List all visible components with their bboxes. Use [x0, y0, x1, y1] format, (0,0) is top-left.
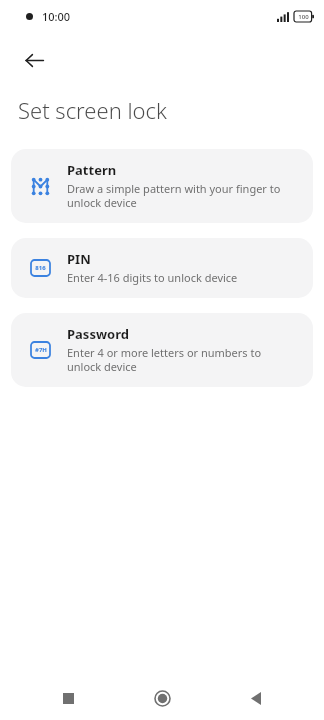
button[interactable]: #7H: [11, 313, 313, 387]
staticText: Pattern: [67, 161, 117, 179]
staticText: Set screen lock: [18, 95, 167, 125]
staticText: #7H: [35, 346, 47, 354]
button[interactable]: Pattern: [11, 149, 313, 223]
staticText: PIN: [67, 250, 91, 268]
staticText: Enter 4 or more letters or numbers to un…: [67, 345, 297, 374]
button[interactable]: Back: [234, 676, 278, 720]
staticText: 10:00: [42, 9, 71, 24]
staticText: Enter 4-16 digits to unlock device: [67, 270, 238, 285]
button[interactable]: 816: [11, 238, 313, 298]
button[interactable]: Recent apps: [46, 676, 90, 720]
staticText: Password: [67, 325, 129, 343]
staticText: 100: [298, 13, 309, 21]
button[interactable]: Home: [140, 676, 184, 720]
staticText: Draw a simple pattern with your finger t…: [67, 181, 297, 210]
staticText: 816: [35, 264, 46, 272]
button[interactable]: Back: [12, 38, 56, 82]
